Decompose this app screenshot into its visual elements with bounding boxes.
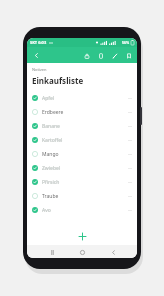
staticText: Kartoffel: [42, 137, 63, 144]
button[interactable]: Pfirsich: [32, 175, 132, 189]
button[interactable]: Avo: [32, 203, 132, 217]
staticText: Banane: [42, 123, 60, 130]
button[interactable]: Edit: [110, 51, 119, 60]
staticText: Pfirsich: [42, 179, 60, 186]
button[interactable]: Zwiebel: [32, 161, 132, 175]
staticText: Einkaufsliste: [32, 75, 84, 86]
button[interactable]: Traube: [32, 189, 132, 203]
button[interactable]: Kartoffel: [32, 133, 132, 147]
staticText: 56%: [122, 40, 130, 45]
staticText: Avo: [42, 207, 51, 214]
staticText: Zwiebel: [42, 165, 61, 172]
button[interactable]: Erdbeere: [32, 105, 132, 119]
button[interactable]: Home: [76, 246, 88, 258]
button[interactable]: Bookmark: [124, 51, 133, 60]
button[interactable]: Mango: [32, 147, 132, 161]
button[interactable]: Apfel: [32, 91, 132, 105]
staticText: Traube: [42, 193, 59, 200]
button[interactable]: Recents: [46, 246, 58, 258]
button[interactable]: Back: [107, 246, 119, 258]
staticText: Apfel: [42, 95, 55, 102]
staticText: Notizen: [32, 67, 47, 72]
staticText: Erdbeere: [42, 109, 64, 116]
button[interactable]: Lock: [82, 51, 91, 60]
button[interactable]: Add item: [32, 227, 132, 245]
button[interactable]: Banane: [32, 119, 132, 133]
button[interactable]: Copy: [96, 51, 105, 60]
staticText: SKT 6:03: [30, 40, 47, 45]
staticText: Mango: [42, 151, 59, 158]
button[interactable]: Back: [31, 50, 41, 60]
